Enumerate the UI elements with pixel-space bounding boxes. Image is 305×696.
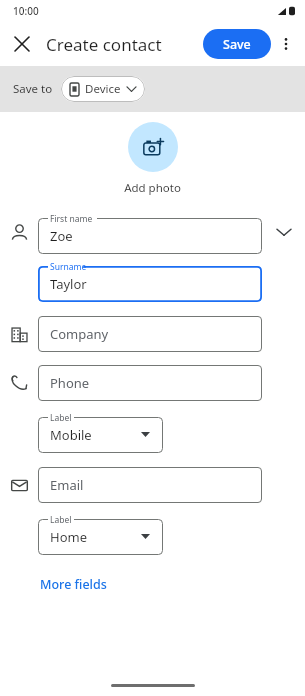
button[interactable]: Surname bbox=[38, 258, 262, 302]
button[interactable]: Close bbox=[6, 28, 38, 60]
staticText: Surname bbox=[50, 261, 87, 273]
button[interactable]: More options bbox=[271, 29, 301, 59]
button[interactable]: Expand name fields bbox=[262, 210, 305, 254]
staticText: Company bbox=[50, 325, 109, 343]
staticText: Label bbox=[50, 412, 72, 424]
button[interactable]: Label bbox=[38, 511, 163, 555]
button[interactable]: Add photo bbox=[128, 122, 178, 172]
button[interactable]: Save bbox=[203, 29, 271, 59]
button[interactable]: First name bbox=[38, 210, 262, 254]
staticText: Taylor bbox=[50, 275, 87, 293]
button[interactable]: Device bbox=[61, 76, 145, 102]
staticText: Mobile bbox=[50, 426, 92, 444]
button[interactable]: Label bbox=[38, 409, 163, 453]
staticText: Save bbox=[223, 36, 251, 53]
staticText: 10:00 bbox=[13, 4, 39, 18]
button[interactable]: Phone bbox=[38, 365, 262, 401]
staticText: Label bbox=[50, 514, 72, 526]
staticText: Email bbox=[50, 476, 84, 494]
staticText: Create contact bbox=[46, 33, 162, 56]
staticText: Device bbox=[85, 81, 121, 97]
staticText: Phone bbox=[50, 374, 90, 392]
button[interactable]: Company bbox=[38, 316, 262, 352]
button[interactable]: More fields bbox=[38, 573, 109, 596]
staticText: Zoe bbox=[50, 227, 73, 245]
staticText: Home bbox=[50, 528, 87, 546]
button[interactable]: Email bbox=[38, 467, 262, 503]
staticText: Add photo bbox=[124, 180, 181, 196]
staticText: First name bbox=[50, 213, 93, 225]
staticText: Save to bbox=[13, 81, 53, 97]
staticText: More fields bbox=[40, 576, 107, 593]
